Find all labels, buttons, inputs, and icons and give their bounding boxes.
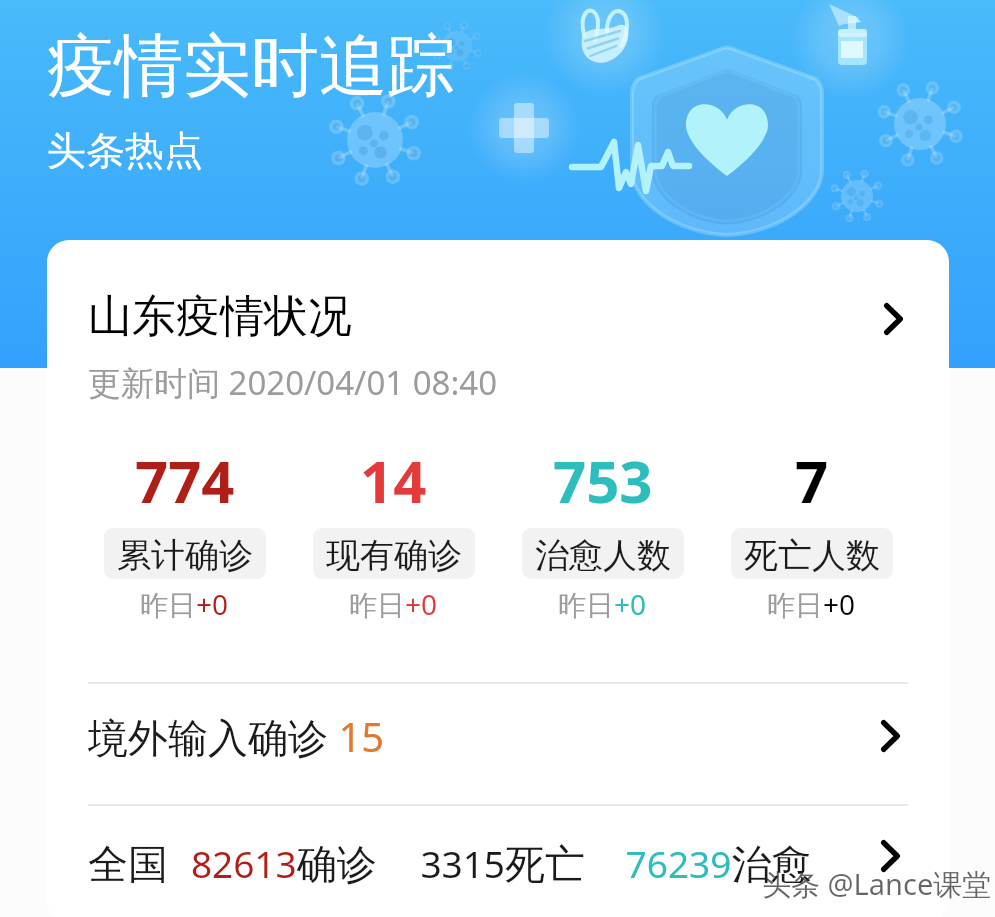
- staticText: 昨日+0: [767, 585, 856, 623]
- button[interactable]: 全国 82613确诊 3315死亡 76239治愈: [47, 798, 949, 914]
- staticText: 境外输入确诊 15: [88, 709, 385, 764]
- button[interactable]: 境外输入确诊 15: [47, 678, 949, 794]
- staticText: 昨日+0: [349, 585, 438, 623]
- staticText: 753: [553, 441, 653, 520]
- staticText: 774: [135, 441, 235, 520]
- staticText: 14: [360, 441, 427, 520]
- staticText: 治愈人数: [535, 534, 671, 577]
- staticText: 山东疫情状况: [88, 289, 352, 344]
- other: Open imported cases details: [881, 720, 900, 752]
- other: Open nationwide details: [881, 840, 900, 872]
- staticText: 现有确诊: [326, 534, 462, 577]
- staticText: 昨日+0: [558, 585, 647, 623]
- staticText: 死亡人数: [744, 534, 880, 577]
- staticText: 头条 @Lance课堂: [762, 864, 992, 904]
- staticText: 头条热点: [47, 126, 203, 175]
- staticText: 昨日+0: [140, 585, 229, 623]
- staticText: 疫情实时追踪: [47, 24, 455, 110]
- staticText: 累计确诊: [117, 534, 253, 577]
- staticText: 全国 82613确诊 3315死亡 76239治愈: [88, 818, 812, 894]
- button[interactable]: 山东疫情状况: [47, 240, 949, 426]
- staticText: 更新时间 2020/04/01 08:40: [88, 360, 498, 405]
- other: Open Shandong epidemic details: [884, 303, 903, 335]
- staticText: 7: [795, 441, 829, 520]
